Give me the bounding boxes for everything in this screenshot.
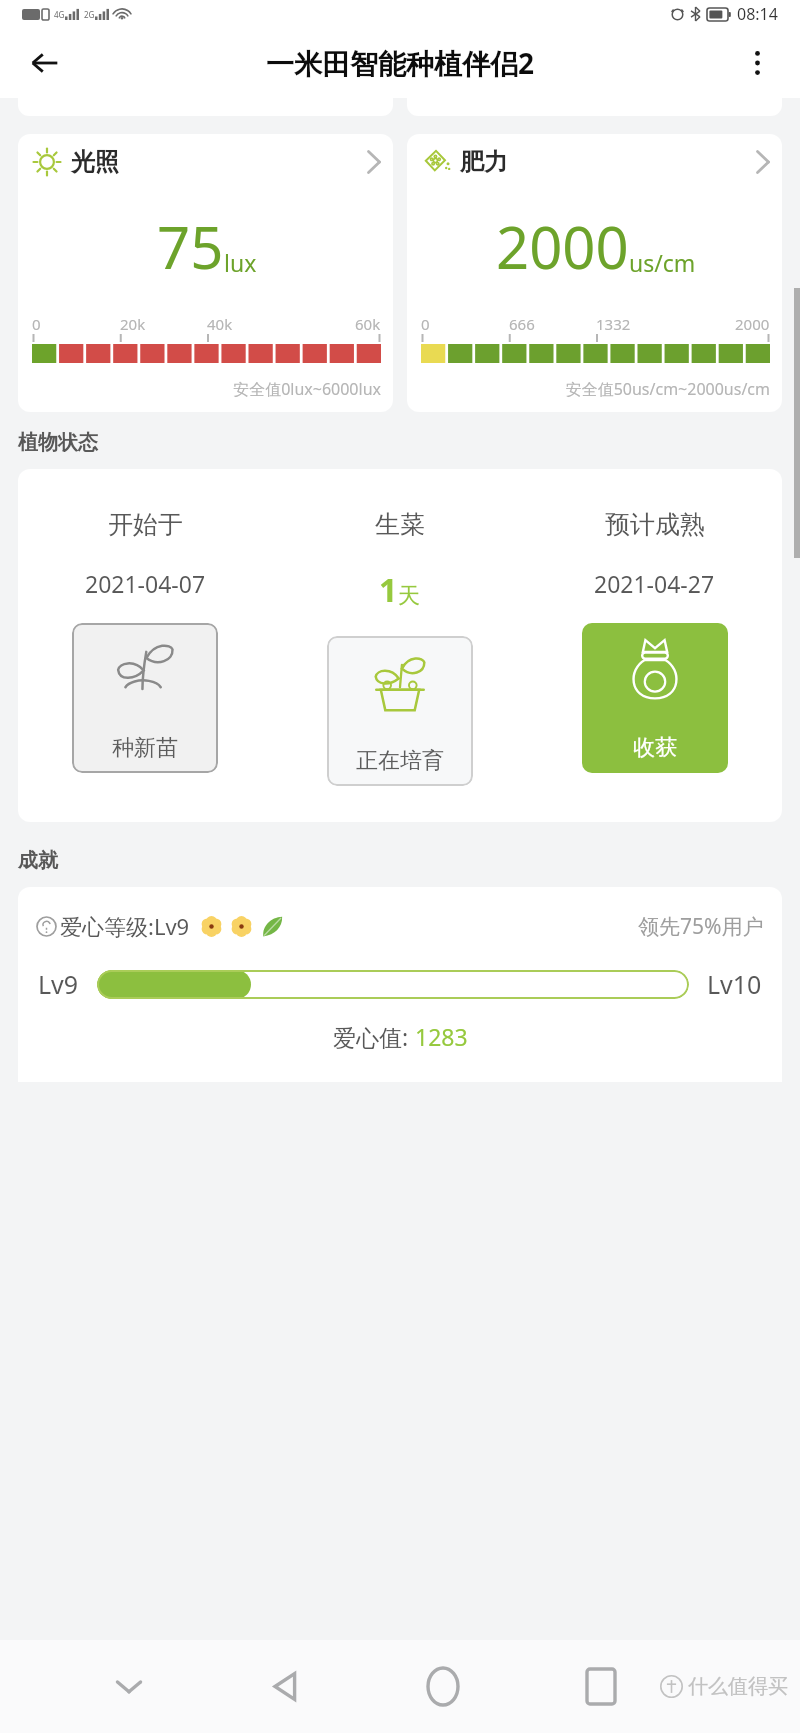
staticText: 40k [207, 314, 233, 334]
staticText: 1 [379, 568, 398, 612]
button[interactable]: Back [207, 1640, 364, 1733]
staticText: 08:14 [737, 3, 778, 25]
staticText: 什么值得买 [688, 1674, 788, 1699]
button[interactable]: Back [16, 34, 74, 92]
staticText: 正在培育 [356, 747, 444, 775]
staticText: lux [224, 247, 257, 278]
staticText: 种新苗 [112, 734, 178, 762]
staticText: 75 [157, 207, 224, 286]
staticText: 爱心等级:Lv9 [60, 911, 190, 941]
staticText: 成就 [18, 848, 58, 873]
staticText: 2G [84, 9, 95, 20]
button[interactable]: 光照 [18, 134, 393, 412]
button[interactable]: Home [364, 1640, 522, 1733]
staticText: 2000 [496, 207, 629, 286]
staticText: 一米田智能种植伴侣2 [266, 44, 535, 82]
staticText: 666 [509, 314, 535, 334]
staticText: 预计成熟 [605, 509, 705, 540]
staticText: 安全值0lux~6000lux [32, 378, 381, 400]
button[interactable]: Hide keyboard [50, 1640, 207, 1733]
button[interactable]: 肥力 [407, 134, 782, 412]
staticText: 肥力 [460, 147, 508, 177]
button[interactable]: More options [728, 34, 786, 92]
staticText: 0 [32, 314, 41, 334]
staticText: 开始于 [108, 509, 183, 540]
staticText: 天 [398, 582, 420, 610]
staticText: 安全值50us/cm~2000us/cm [421, 378, 770, 400]
staticText: 2000 [735, 314, 770, 334]
staticText: 20k [120, 314, 146, 334]
staticText: 爱心值: [333, 1021, 415, 1052]
staticText: Lv9 [38, 967, 79, 1001]
staticText: 2021-04-27 [594, 568, 715, 599]
staticText: 植物状态 [18, 430, 98, 455]
staticText: 1283 [415, 1021, 468, 1052]
staticText: 2021-04-07 [85, 568, 206, 599]
staticText: 光照 [71, 147, 119, 177]
button[interactable]: 种新苗 [72, 623, 218, 773]
button[interactable]: 收获 [582, 623, 728, 773]
staticText: 60k [355, 314, 381, 334]
staticText: us/cm [629, 247, 696, 278]
staticText: 4G [54, 9, 65, 20]
staticText: 0 [421, 314, 430, 334]
button[interactable]: Recent apps [522, 1640, 680, 1733]
staticText: 收获 [633, 734, 677, 762]
staticText: 领先75%用户 [638, 912, 764, 941]
button[interactable]: 正在培育 [327, 636, 473, 786]
staticText: 生菜 [375, 509, 425, 540]
staticText: 1332 [596, 314, 631, 334]
staticText: Lv10 [707, 967, 762, 1001]
